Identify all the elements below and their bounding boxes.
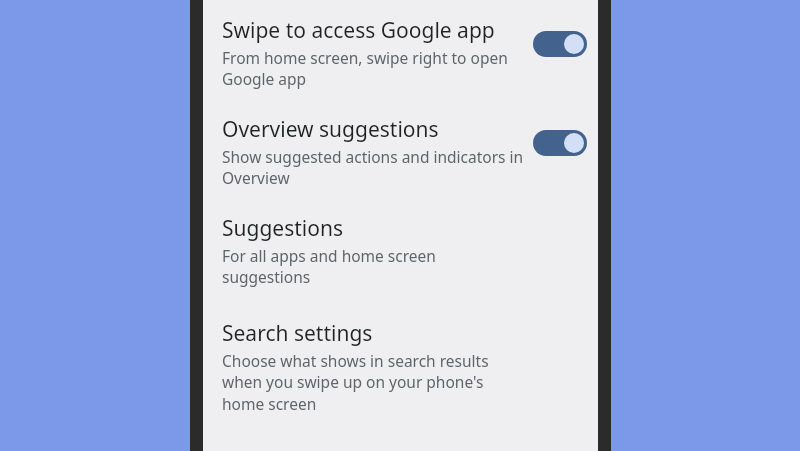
- button[interactable]: Suggestions: [203, 214, 598, 288]
- button[interactable]: Overview suggestions: [203, 115, 598, 189]
- button[interactable]: Swipe to access Google app: [533, 31, 587, 57]
- staticText: For all apps and home screen suggestions: [222, 245, 525, 288]
- button[interactable]: Overview suggestions: [533, 130, 587, 156]
- staticText: From home screen, swipe right to open Go…: [222, 47, 525, 90]
- button[interactable]: Search settings: [203, 319, 598, 415]
- staticText: Overview suggestions: [222, 115, 439, 144]
- staticText: Swipe to access Google app: [222, 16, 495, 45]
- staticText: Search settings: [222, 319, 373, 348]
- staticText: Show suggested actions and indicators in…: [222, 146, 525, 189]
- staticText: Choose what shows in search results when…: [222, 350, 525, 415]
- staticText: Suggestions: [222, 214, 343, 243]
- button[interactable]: Swipe to access Google app: [203, 16, 598, 90]
